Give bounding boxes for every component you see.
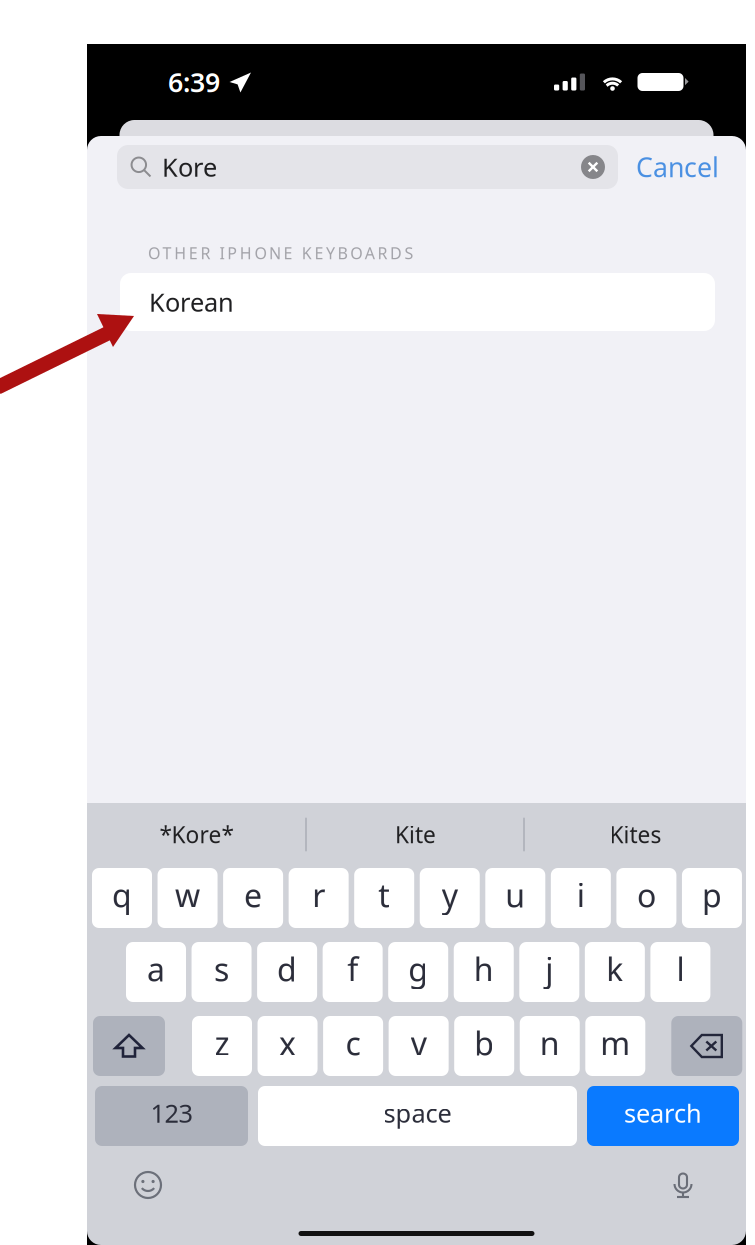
button[interactable]: p	[682, 868, 742, 928]
button[interactable]: g	[388, 942, 448, 1002]
button[interactable]: s	[192, 942, 252, 1002]
staticText: m	[600, 1022, 630, 1064]
button[interactable]: Korean	[120, 273, 715, 331]
staticText: r	[312, 874, 325, 916]
button[interactable]: v	[389, 1016, 449, 1076]
staticText: e	[244, 874, 262, 916]
button[interactable]: u	[485, 868, 545, 928]
staticText: Kites	[609, 819, 661, 849]
staticText: 123	[150, 1096, 192, 1130]
button[interactable]: o	[616, 868, 676, 928]
button[interactable]: *Kore*	[87, 803, 306, 866]
staticText: b	[474, 1022, 494, 1064]
staticText: s	[214, 948, 229, 990]
staticText: i	[577, 874, 585, 916]
button[interactable]: n	[520, 1016, 580, 1076]
button[interactable]: search	[587, 1086, 739, 1146]
button[interactable]: j	[519, 942, 579, 1002]
button[interactable]: Kites	[525, 803, 746, 866]
staticText: d	[277, 948, 297, 990]
button[interactable]: q	[92, 868, 152, 928]
staticText: OTHER IPHONE KEYBOARDS	[148, 242, 414, 264]
staticText: g	[408, 948, 428, 990]
staticText: w	[175, 874, 200, 916]
staticText: q	[112, 874, 132, 916]
staticText: o	[637, 874, 656, 916]
staticText: l	[676, 948, 684, 990]
staticText: v	[411, 1022, 427, 1064]
staticText: k	[606, 948, 623, 990]
staticText: *Kore*	[159, 819, 233, 849]
staticText: Korean	[149, 285, 234, 319]
button[interactable]: Shift	[93, 1016, 165, 1076]
button[interactable]: space	[258, 1086, 577, 1146]
staticText: x	[279, 1022, 296, 1064]
staticText: y	[442, 874, 458, 916]
button[interactable]: e	[223, 868, 283, 928]
button[interactable]: d	[257, 942, 317, 1002]
staticText: n	[540, 1022, 560, 1064]
button[interactable]: 123	[95, 1086, 248, 1146]
button[interactable]: l	[650, 942, 710, 1002]
staticText: Cancel	[636, 149, 719, 185]
button[interactable]: x	[258, 1016, 318, 1076]
staticText: 6:39	[168, 64, 220, 100]
button[interactable]: f	[323, 942, 383, 1002]
button[interactable]: t	[354, 868, 414, 928]
button[interactable]: w	[158, 868, 218, 928]
button[interactable]: k	[585, 942, 645, 1002]
button[interactable]: Cancel	[636, 145, 719, 189]
button[interactable]: Delete	[671, 1016, 742, 1076]
button[interactable]: b	[454, 1016, 514, 1076]
button[interactable]: h	[454, 942, 514, 1002]
staticText: Kite	[395, 819, 436, 849]
button[interactable]: Kite	[306, 803, 525, 866]
button[interactable]: c	[323, 1016, 383, 1076]
button[interactable]: z	[192, 1016, 252, 1076]
button[interactable]: Kore	[117, 145, 618, 189]
staticText: a	[147, 948, 165, 990]
staticText: h	[474, 948, 494, 990]
button[interactable]: a	[126, 942, 186, 1002]
staticText: Kore	[162, 150, 217, 184]
staticText: j	[545, 948, 553, 990]
button[interactable]: y	[420, 868, 480, 928]
button[interactable]: Emoji	[125, 1162, 171, 1208]
staticText: z	[214, 1022, 229, 1064]
button[interactable]: Dictation	[660, 1162, 706, 1208]
staticText: u	[505, 874, 525, 916]
button[interactable]: r	[289, 868, 349, 928]
staticText: space	[383, 1096, 451, 1130]
staticText: p	[702, 874, 722, 916]
staticText: t	[378, 874, 390, 916]
staticText: f	[347, 948, 358, 990]
staticText: search	[624, 1096, 702, 1130]
button[interactable]: i	[551, 868, 611, 928]
staticText: c	[346, 1022, 361, 1064]
button[interactable]: m	[585, 1016, 645, 1076]
